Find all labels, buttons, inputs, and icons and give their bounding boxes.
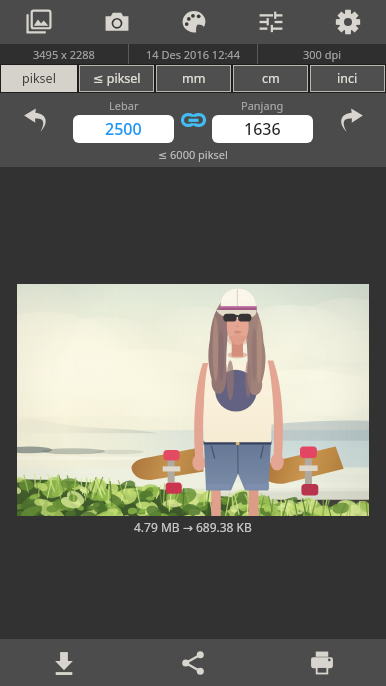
- staticText: cm: [262, 70, 280, 87]
- staticText: 4.79 MB → 689.38 KB: [134, 519, 252, 535]
- button[interactable]: Print: [257, 639, 386, 686]
- button[interactable]: 2500: [73, 115, 174, 143]
- button[interactable]: Redo: [313, 93, 386, 147]
- button[interactable]: Share: [128, 639, 257, 686]
- staticText: mm: [182, 70, 206, 87]
- button[interactable]: Link aspect ratio: [174, 93, 212, 147]
- staticText: 1636: [244, 118, 281, 140]
- button[interactable]: cm: [233, 65, 308, 92]
- button[interactable]: Adjust: [232, 0, 309, 44]
- button[interactable]: mm: [156, 65, 231, 92]
- button[interactable]: Pick image: [0, 0, 78, 44]
- button[interactable]: Palette: [155, 0, 232, 44]
- button[interactable]: Undo: [0, 93, 73, 147]
- staticText: 14 Des 2016 12:44: [146, 47, 240, 62]
- staticText: 2500: [105, 118, 142, 140]
- staticText: Panjang: [241, 98, 284, 113]
- button[interactable]: Save: [0, 639, 128, 686]
- button[interactable]: ≤ piksel: [79, 65, 154, 92]
- staticText: ≤ 6000 piksel: [158, 147, 228, 162]
- button[interactable]: [17, 284, 369, 516]
- staticText: Lebar: [109, 98, 139, 113]
- staticText: 3495 x 2288: [33, 47, 95, 62]
- staticText: ≤ piksel: [93, 70, 141, 87]
- staticText: piksel: [22, 70, 56, 87]
- staticText: 300 dpi: [303, 47, 342, 62]
- button[interactable]: Settings: [309, 0, 386, 44]
- button[interactable]: piksel: [1, 65, 77, 92]
- button[interactable]: Camera: [78, 0, 155, 44]
- button[interactable]: 1636: [212, 115, 313, 143]
- button[interactable]: inci: [310, 65, 385, 92]
- staticText: inci: [337, 70, 358, 87]
